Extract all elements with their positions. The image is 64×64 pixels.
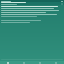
button[interactable]: Library: [32, 62, 48, 64]
button[interactable]: [1, 20, 63, 21]
button[interactable]: Search: [16, 62, 32, 64]
button[interactable]: Profile: [48, 62, 64, 64]
button[interactable]: Home: [0, 62, 16, 64]
button[interactable]: More options: [0, 2, 64, 5]
